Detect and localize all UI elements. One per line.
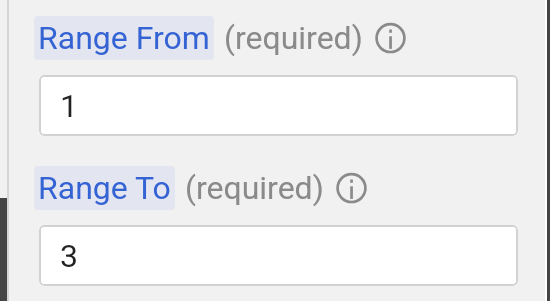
staticText: 1 bbox=[60, 87, 78, 125]
staticText: (required) bbox=[185, 169, 324, 207]
staticText: Range From bbox=[38, 19, 210, 57]
button[interactable]: 3 bbox=[39, 225, 518, 286]
button[interactable]: 1 bbox=[39, 75, 518, 136]
button[interactable]: Range To bbox=[34, 166, 175, 210]
staticText: (required) bbox=[224, 19, 363, 57]
button[interactable]: Information about Range To bbox=[336, 173, 367, 204]
button[interactable]: Information about Range From bbox=[375, 23, 406, 54]
button[interactable]: Range From bbox=[34, 16, 214, 60]
staticText: Range To bbox=[38, 169, 171, 207]
staticText: 3 bbox=[60, 237, 78, 275]
